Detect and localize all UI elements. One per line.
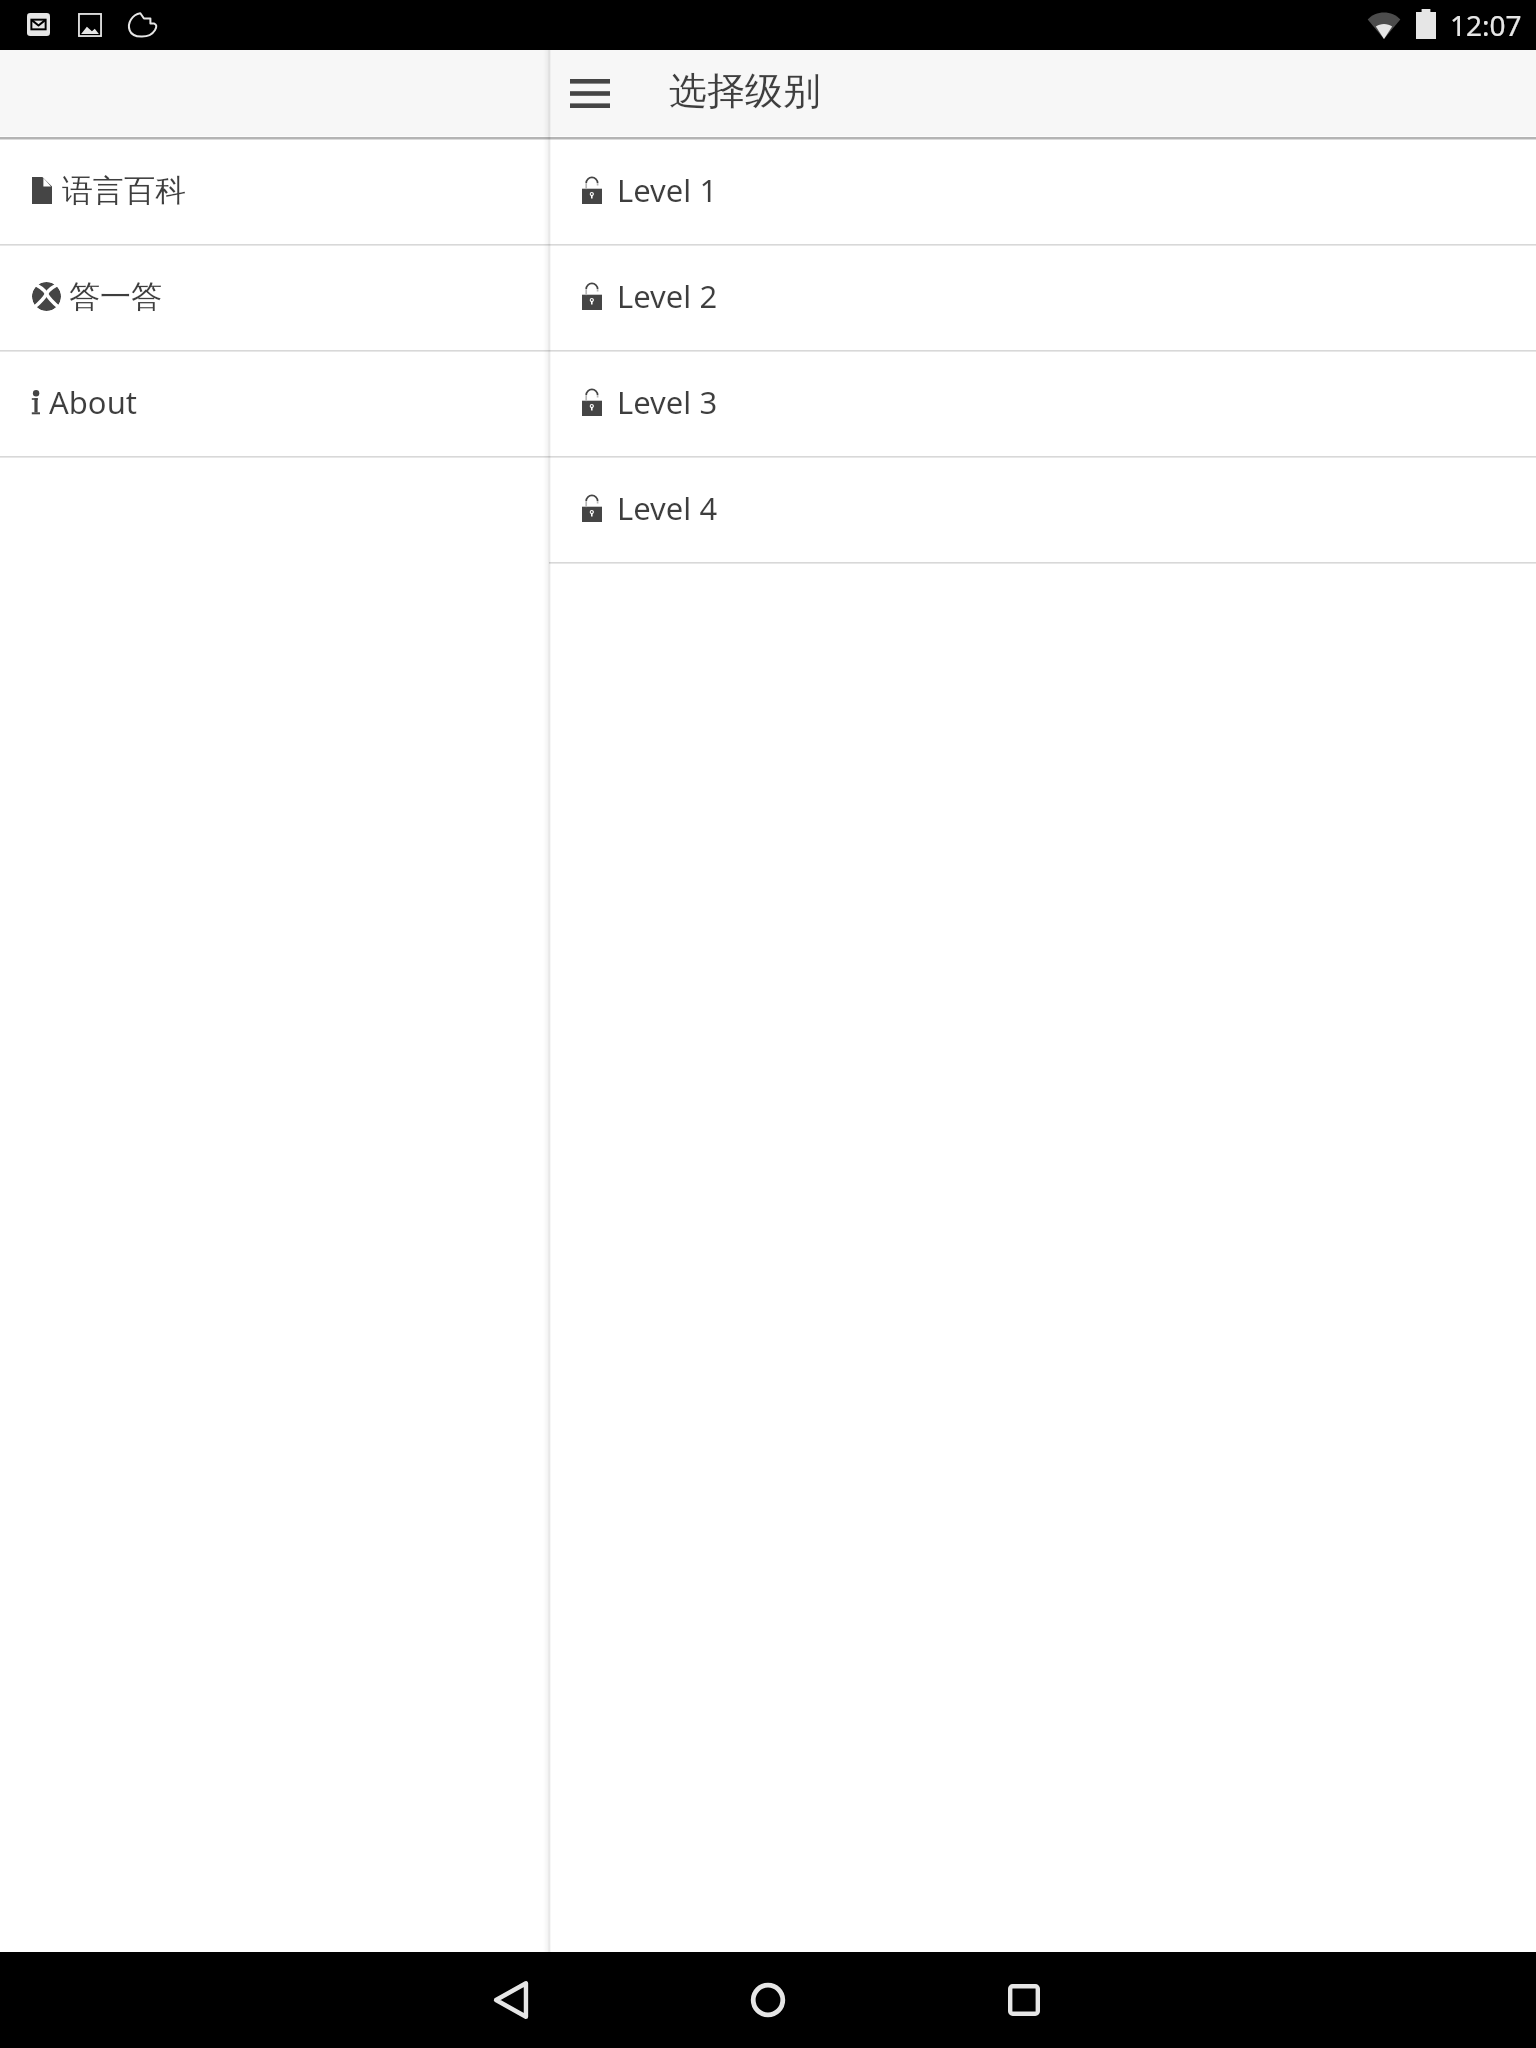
button[interactable]: Home xyxy=(734,1952,802,2048)
staticText: 12:07 xyxy=(1450,6,1522,44)
button[interactable]: Level 4 xyxy=(549,458,1536,562)
staticText: 选择级别 xyxy=(669,67,821,115)
button[interactable]: Level 2 xyxy=(549,246,1536,350)
button[interactable]: About xyxy=(0,352,549,456)
staticText: Level 1 xyxy=(617,169,718,211)
staticText: Level 2 xyxy=(617,275,718,317)
button[interactable]: Level 1 xyxy=(549,140,1536,244)
button[interactable]: Open navigation drawer xyxy=(555,58,625,128)
staticText: Level 4 xyxy=(617,487,718,529)
staticText: About xyxy=(49,381,137,423)
button[interactable]: 答一答 xyxy=(0,246,549,350)
button[interactable]: Level 3 xyxy=(549,352,1536,456)
button[interactable]: Back xyxy=(477,1952,545,2048)
staticText: 语言百科 xyxy=(62,171,186,210)
staticText: 答一答 xyxy=(69,277,162,316)
button[interactable]: 语言百科 xyxy=(0,140,549,244)
staticText: Level 3 xyxy=(617,381,718,423)
button[interactable]: Recents xyxy=(990,1952,1058,2048)
